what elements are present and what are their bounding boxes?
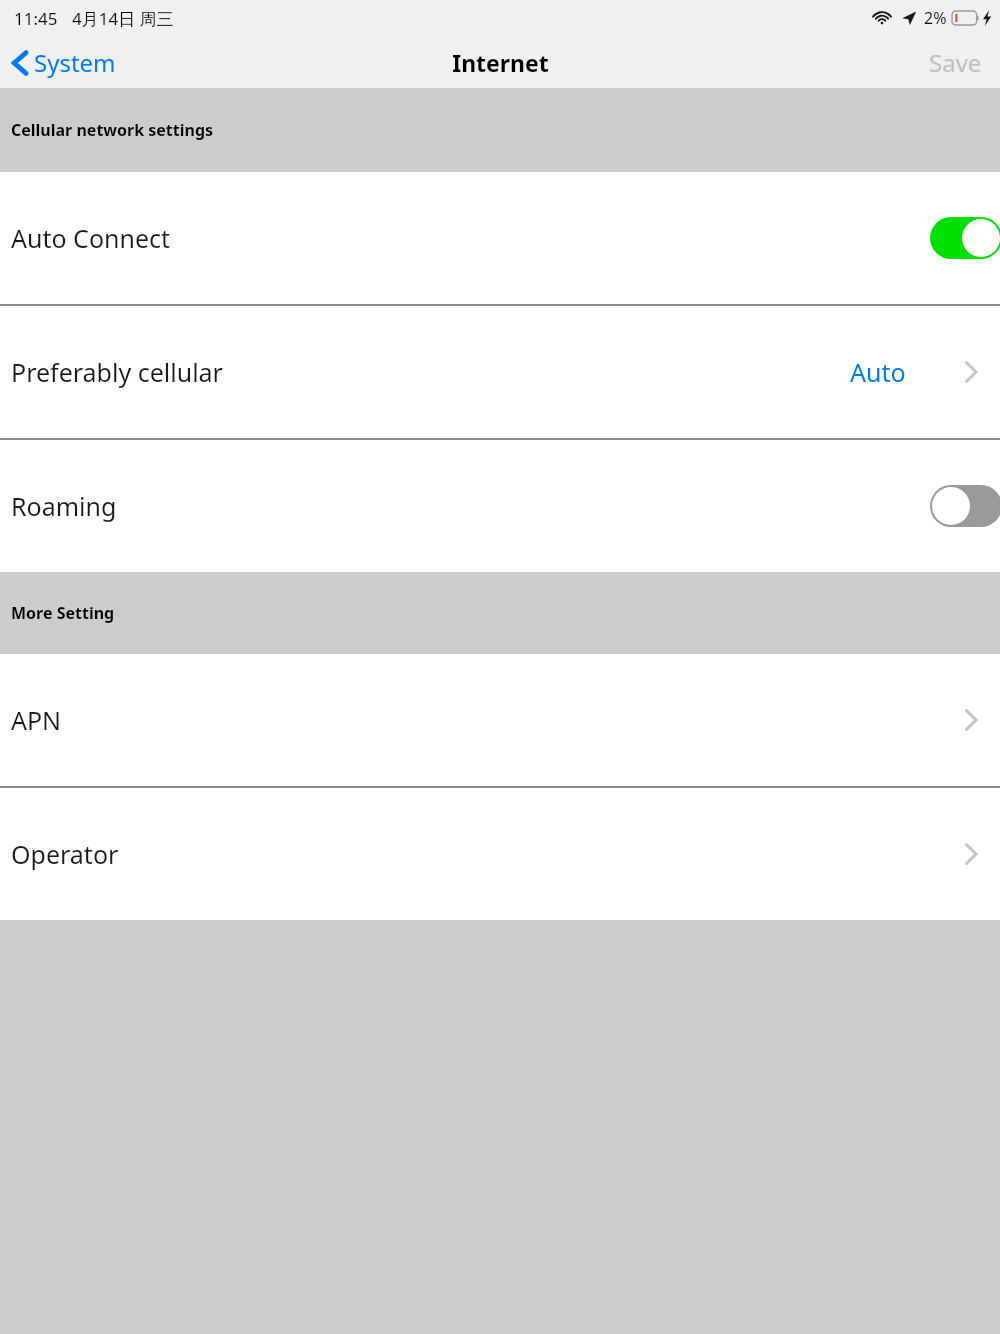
staticText: Auto [850,355,906,389]
staticText: Roaming [11,489,117,523]
staticText: System [34,46,116,79]
staticText: Save [929,46,982,79]
button[interactable]: Roaming [0,440,1000,572]
staticText: Auto Connect [11,221,171,255]
staticText: Operator [11,837,119,871]
other: Open [964,359,978,385]
staticText: 4月14日 周三 [72,7,174,30]
button[interactable]: Preferably cellular [0,306,1000,438]
staticText: Preferably cellular [11,355,223,389]
staticText: APN [11,703,62,737]
other: Open [964,707,978,733]
staticText: 11:45 [14,7,58,30]
button[interactable]: Auto Connect [0,172,1000,304]
button[interactable]: Operator [0,788,1000,920]
staticText: 2% [924,7,947,29]
staticText: Cellular network settings [11,119,214,141]
button[interactable]: Save [911,38,1000,87]
button[interactable]: APN [0,654,1000,786]
staticText: More Setting [11,602,115,624]
button[interactable]: System [0,40,128,85]
staticText: Internet [452,47,549,78]
other: Open [964,841,978,867]
